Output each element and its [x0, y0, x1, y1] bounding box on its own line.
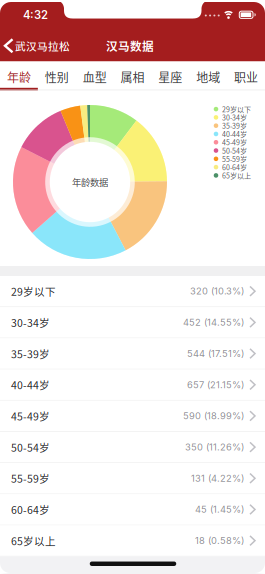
staticText: 45-49岁 [11, 408, 50, 424]
button[interactable]: 30-34岁 [0, 307, 265, 338]
button[interactable]: 返回 武汉马拉松 [0, 38, 70, 53]
staticText: 657 (21.15%) [187, 379, 244, 390]
staticText: 50-54岁 [222, 145, 247, 156]
button[interactable]: 65岁以上 [0, 525, 265, 557]
staticText: 50-54岁 [11, 439, 50, 455]
button[interactable]: 属相 [114, 61, 151, 90]
button[interactable]: 35-39岁 [0, 338, 265, 370]
staticText: 30-34岁 [222, 112, 247, 122]
staticText: 4:32 [23, 8, 48, 22]
staticText: 血型 [83, 68, 107, 86]
staticText: 55-59岁 [11, 471, 50, 486]
button[interactable]: 职业 [227, 61, 265, 90]
staticText: 29岁以下 [222, 104, 251, 114]
staticText: 年龄 [7, 68, 31, 86]
staticText: 60-64岁 [222, 162, 247, 172]
staticText: 武汉马拉松 [15, 38, 70, 53]
staticText: 地域 [196, 68, 220, 86]
staticText: 属相 [120, 68, 144, 86]
staticText: 65岁以上 [222, 170, 251, 180]
button[interactable]: 45-49岁 [0, 401, 265, 432]
staticText: 45-49岁 [222, 137, 247, 147]
button[interactable]: 60-64岁 [0, 494, 265, 525]
button[interactable]: 29岁以下 [0, 276, 265, 307]
button[interactable]: 血型 [76, 61, 114, 90]
staticText: 45 (1.45%) [195, 504, 244, 515]
button[interactable]: 50-54岁 [0, 432, 265, 463]
staticText: 年龄数据 [72, 175, 108, 189]
staticText: 452 (14.55%) [183, 317, 244, 328]
button[interactable]: 星座 [151, 61, 189, 90]
staticText: 544 (17.51%) [187, 348, 244, 359]
staticText: 350 (11.26%) [185, 441, 244, 453]
staticText: 30-34岁 [11, 315, 50, 330]
button[interactable]: 地域 [189, 61, 227, 90]
button[interactable]: 55-59岁 [0, 463, 265, 494]
staticText: 性别 [45, 68, 69, 86]
staticText: 35-39岁 [222, 121, 247, 131]
staticText: 35-39岁 [11, 346, 50, 361]
staticText: 55-59岁 [222, 154, 247, 164]
staticText: 40-44岁 [11, 377, 50, 392]
staticText: 131 (4.22%) [191, 473, 244, 484]
button[interactable]: 40-44岁 [0, 369, 265, 401]
staticText: 590 (18.99%) [183, 410, 244, 422]
staticText: 29岁以下 [11, 284, 56, 299]
staticText: 18 (0.58%) [195, 535, 244, 546]
staticText: 职业 [234, 68, 258, 86]
staticText: 65岁以上 [11, 533, 56, 548]
staticText: 汉马数据 [106, 37, 154, 54]
staticText: 60-64岁 [11, 502, 50, 517]
staticText: 星座 [158, 68, 182, 86]
button[interactable]: 年龄 [0, 61, 38, 90]
staticText: 320 (10.3%) [190, 286, 244, 297]
staticText: 40-44岁 [222, 129, 247, 139]
button[interactable]: 性别 [38, 61, 76, 90]
